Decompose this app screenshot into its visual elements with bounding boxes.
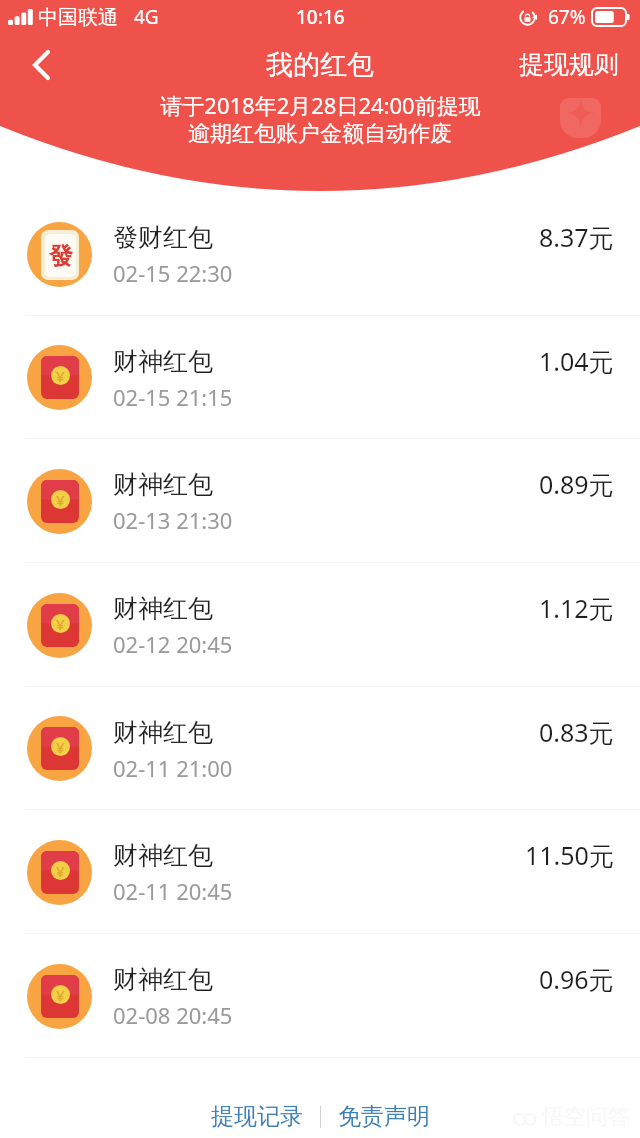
staticText: 4G xyxy=(134,4,159,30)
staticText: 0.83元 xyxy=(539,715,614,749)
staticText: ¥ xyxy=(56,366,65,385)
staticText: 11.50元 xyxy=(525,838,614,872)
staticText: 财神红包 xyxy=(113,840,213,871)
button[interactable]: ¥ xyxy=(0,563,640,687)
staticText: 02-08 20:45 xyxy=(113,1000,233,1030)
staticText: 0.96元 xyxy=(539,962,614,996)
staticText: 财神红包 xyxy=(113,469,213,500)
staticText: 02-12 20:45 xyxy=(113,629,233,659)
staticText: ¥ xyxy=(56,737,65,756)
button[interactable]: ¥ xyxy=(0,934,640,1058)
staticText: 财神红包 xyxy=(113,593,213,624)
button[interactable]: ¥ xyxy=(0,810,640,934)
staticText: 1.04元 xyxy=(539,344,614,378)
staticText: 02-15 21:15 xyxy=(113,382,233,412)
staticText: 02-11 21:00 xyxy=(113,753,233,783)
staticText: 财神红包 xyxy=(113,717,213,748)
staticText: 我的红包 xyxy=(266,48,374,82)
staticText: 02-11 20:45 xyxy=(113,876,233,906)
button[interactable]: Lucky bonus xyxy=(560,98,601,138)
staticText: 發 xyxy=(49,241,73,271)
staticText: 提现记录 xyxy=(211,1102,303,1131)
staticText: 8.37元 xyxy=(539,220,614,254)
staticText: 0.89元 xyxy=(539,467,614,501)
staticText: ¥ xyxy=(56,490,65,509)
staticText: 提现规则 xyxy=(519,49,619,80)
button[interactable]: 提现规则 xyxy=(505,41,640,88)
staticText: ¥ xyxy=(56,985,65,1004)
staticText: 發财红包 xyxy=(113,222,213,253)
staticText: 10:16 xyxy=(296,4,345,30)
staticText: 免责声明 xyxy=(338,1102,430,1131)
staticText: 请于2018年2月28日24:00前提现 xyxy=(160,90,481,120)
button[interactable]: ¥ xyxy=(0,316,640,439)
button[interactable]: 提现记录 xyxy=(203,1096,311,1137)
staticText: 02-13 21:30 xyxy=(113,505,233,535)
staticText: ¥ xyxy=(56,614,65,633)
button[interactable]: 發 xyxy=(0,192,640,316)
staticText: 悟空问答 xyxy=(542,1103,630,1131)
staticText: 财神红包 xyxy=(113,964,213,995)
staticText: 中国联通 xyxy=(38,5,118,30)
button[interactable]: Back xyxy=(18,40,62,84)
staticText: 财神红包 xyxy=(113,346,213,377)
button[interactable]: ¥ xyxy=(0,439,640,563)
staticText: 逾期红包账户金额自动作废 xyxy=(188,120,452,148)
button[interactable]: ¥ xyxy=(0,687,640,810)
staticText: 1.12元 xyxy=(539,591,614,625)
staticText: 02-15 22:30 xyxy=(113,258,233,288)
staticText: 67% xyxy=(548,4,586,30)
button[interactable]: 免责声明 xyxy=(330,1096,438,1137)
staticText: ¥ xyxy=(56,861,65,880)
